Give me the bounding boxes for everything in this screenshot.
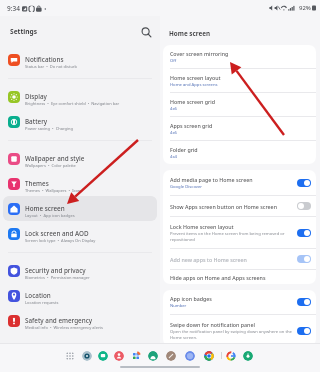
- button[interactable]: Cover screen mirroring: [163, 45, 316, 68]
- staticText: Home and Apps screens: [170, 82, 311, 88]
- staticText: Safety and emergency: [25, 316, 93, 325]
- button[interactable]: Off: [297, 202, 311, 210]
- button[interactable]: Search: [137, 23, 155, 41]
- button[interactable]: Folder grid: [163, 141, 316, 164]
- button[interactable]: App icon badges: [163, 290, 316, 314]
- button[interactable]: Lock screen and AOD: [3, 221, 157, 246]
- staticText: Home screen: [25, 204, 65, 213]
- staticText: Off: [170, 58, 311, 64]
- button[interactable]: Add media page to Home screen: [163, 170, 316, 195]
- staticText: Folder grid: [170, 146, 198, 153]
- staticText: Home screen: [169, 29, 210, 38]
- button[interactable]: Apps screen grid: [163, 117, 316, 140]
- staticText: 4x6: [170, 106, 311, 112]
- staticText: Wallpaper and style: [25, 154, 85, 163]
- button[interactable]: On: [297, 179, 311, 187]
- button[interactable]: Google: [226, 351, 236, 361]
- staticText: Swipe down for notification panel: [170, 321, 255, 328]
- button[interactable]: All apps: [65, 351, 75, 361]
- staticText: Add media page to Home screen: [170, 176, 253, 183]
- button[interactable]: Location: [3, 283, 157, 308]
- staticText: Location requests: [25, 300, 154, 305]
- button[interactable]: Add new apps to Home screen: [163, 249, 316, 269]
- staticText: Layout • App icon badges: [25, 213, 154, 218]
- staticText: Themes • Wallpapers • Icons: [25, 188, 154, 193]
- button[interactable]: Maps: [148, 351, 158, 361]
- button[interactable]: Battery: [3, 109, 157, 134]
- button[interactable]: Swipe down for notification panel: [163, 315, 316, 346]
- staticText: Biometrics • Permission manager: [25, 275, 154, 280]
- staticText: Location: [25, 291, 51, 300]
- button[interactable]: Weather: [243, 351, 253, 361]
- button[interactable]: Google apps: [131, 351, 141, 361]
- button[interactable]: Gallery: [185, 351, 195, 361]
- staticText: Lock Home screen layout: [170, 223, 234, 230]
- button[interactable]: Compass: [166, 351, 176, 361]
- button[interactable]: Show Apps screen button on Home screen: [163, 196, 316, 216]
- button[interactable]: Wallpaper and style: [3, 146, 157, 171]
- staticText: 4x4: [170, 154, 311, 160]
- button[interactable]: Home screen layout: [163, 69, 316, 92]
- staticText: Power saving • Charging: [25, 126, 154, 131]
- staticText: Apps screen grid: [170, 122, 213, 129]
- button[interactable]: Messages: [98, 351, 108, 361]
- button[interactable]: Lock Home screen layout: [163, 217, 316, 248]
- button[interactable]: On: [297, 255, 311, 263]
- button[interactable]: On: [297, 327, 311, 335]
- staticText: Medical info • Wireless emergency alerts: [25, 325, 154, 330]
- staticText: Cover screen mirroring: [170, 50, 229, 57]
- staticText: 92%: [299, 4, 311, 12]
- button[interactable]: Chrome: [204, 351, 214, 361]
- button[interactable]: Hide apps on Home and Apps screens: [163, 270, 316, 284]
- staticText: Display: [25, 92, 47, 101]
- button[interactable]: Phone: [114, 351, 124, 361]
- button[interactable]: Samsung Internet: [82, 351, 92, 361]
- staticText: Themes: [25, 179, 49, 188]
- staticText: Google Discover: [170, 184, 293, 190]
- button[interactable]: Themes: [3, 171, 157, 196]
- staticText: Home screen layout: [170, 74, 221, 81]
- staticText: Brightness • Eye comfort shield • Naviga…: [25, 101, 154, 106]
- button[interactable]: Notifications: [3, 47, 157, 72]
- staticText: Add new apps to Home screen: [170, 256, 247, 263]
- staticText: Battery: [25, 117, 48, 126]
- staticText: App icon badges: [170, 295, 212, 302]
- button[interactable]: On: [297, 298, 311, 306]
- staticText: Wallpapers • Color palette: [25, 163, 154, 168]
- staticText: Open the notification panel by swiping d…: [170, 329, 293, 340]
- staticText: Hide apps on Home and Apps screens: [170, 274, 266, 281]
- staticText: Prevent items on the Home screen from be…: [170, 231, 293, 242]
- staticText: Notifications: [25, 55, 64, 64]
- staticText: Security and privacy: [25, 266, 86, 275]
- staticText: Show Apps screen button on Home screen: [170, 203, 277, 210]
- staticText: Home screen grid: [170, 98, 215, 105]
- staticText: 4x6: [170, 130, 311, 136]
- staticText: Screen lock type • Always On Display: [25, 238, 154, 243]
- button[interactable]: Safety and emergency: [3, 308, 157, 333]
- staticText: 9:34: [7, 4, 20, 13]
- button[interactable]: Display: [3, 84, 157, 109]
- button[interactable]: Home screen: [3, 196, 157, 221]
- button[interactable]: On: [297, 229, 311, 237]
- button[interactable]: Home screen grid: [163, 93, 316, 116]
- staticText: Status bar • Do not disturb: [25, 64, 154, 69]
- staticText: Number: [170, 303, 293, 309]
- staticText: Lock screen and AOD: [25, 229, 89, 238]
- button[interactable]: Security and privacy: [3, 258, 157, 283]
- staticText: Settings: [10, 27, 38, 36]
